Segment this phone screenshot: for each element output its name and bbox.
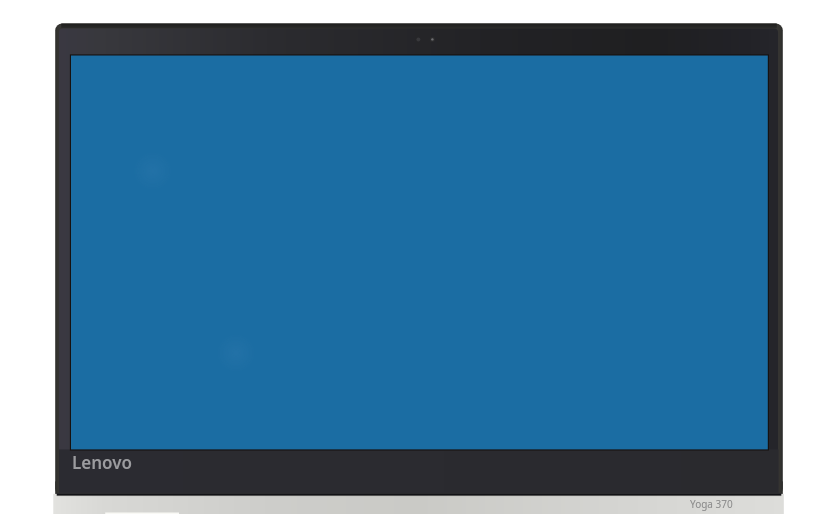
staticText: Yoga 370 (690, 497, 733, 511)
staticText: Lenovo (72, 451, 133, 474)
button[interactable]: Lenovo Yoga 370 laptop product photo (0, 0, 837, 514)
